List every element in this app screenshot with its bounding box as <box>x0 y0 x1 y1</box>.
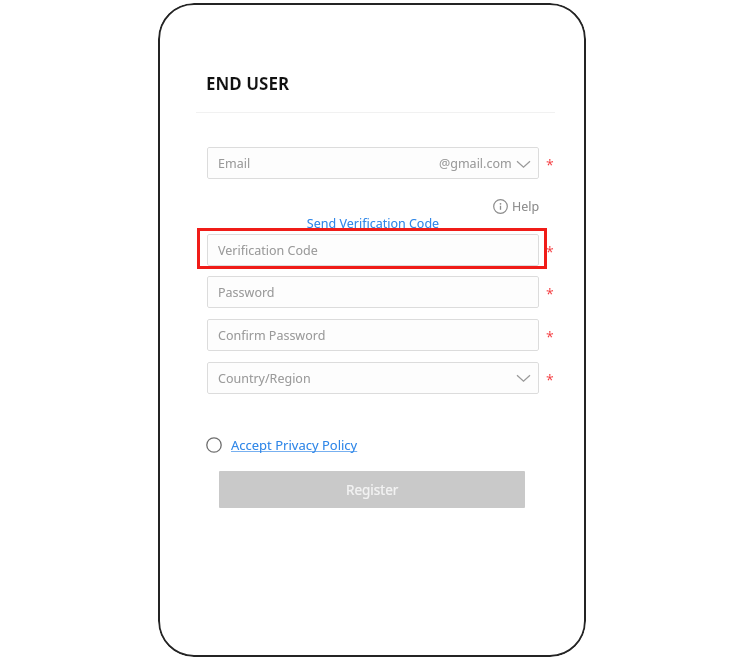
button[interactable]: Accept Privacy Policy <box>204 434 360 456</box>
staticText: Country/Region <box>218 370 311 387</box>
staticText: Password <box>218 284 275 301</box>
staticText: Verification Code <box>218 242 318 259</box>
staticText: * <box>546 370 554 389</box>
button[interactable]: Register <box>219 471 525 508</box>
staticText: Confirm Password <box>218 327 326 344</box>
button[interactable]: Email <box>207 147 539 179</box>
staticText: END USER <box>206 72 290 95</box>
button[interactable]: Confirm Password <box>207 319 539 351</box>
staticText: * <box>546 242 554 261</box>
button[interactable]: Send Verification Code <box>207 215 539 232</box>
button[interactable]: Country/Region <box>207 362 539 394</box>
staticText: Register <box>346 481 399 499</box>
staticText: Send Verification Code <box>207 215 539 232</box>
staticText: * <box>546 327 554 346</box>
staticText: Accept Privacy Policy <box>231 436 358 454</box>
button[interactable]: Password <box>207 276 539 308</box>
staticText: Email <box>218 155 251 172</box>
staticText: @gmail.com <box>439 155 512 172</box>
staticText: * <box>546 155 554 174</box>
staticText: * <box>546 284 554 303</box>
button[interactable]: Verification Code <box>207 234 539 266</box>
button[interactable]: Help <box>491 196 542 217</box>
staticText: Help <box>512 198 540 215</box>
